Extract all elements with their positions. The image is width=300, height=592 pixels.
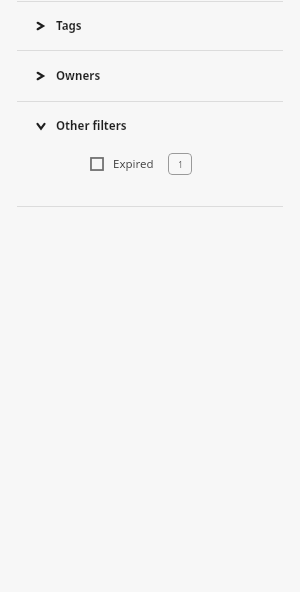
staticText: Owners <box>56 68 101 84</box>
staticText: 1 <box>178 159 183 170</box>
staticText: Other filters <box>56 118 127 134</box>
button[interactable]: Other filters <box>0 102 300 149</box>
button[interactable]: Expired <box>83 156 161 172</box>
button[interactable]: Owners <box>0 51 300 101</box>
staticText: Tags <box>56 18 82 34</box>
button[interactable]: Tags <box>0 2 300 50</box>
staticText: Expired <box>113 156 154 172</box>
